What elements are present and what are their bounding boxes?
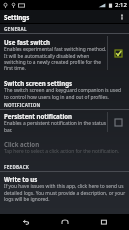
staticText: Enables experimental fast switching meth… [4,46,108,71]
button[interactable]: Write to us [0,172,129,204]
staticText: If you have issues with this app, click … [4,183,126,202]
button[interactable]: Back [10,214,40,230]
button[interactable]: Switch screen settings [0,72,129,101]
button[interactable]: Persistent notification [0,110,129,134]
staticText: Enables a persistent notification in the… [4,120,108,133]
staticText: Switch screen settings [4,79,73,87]
button[interactable]: Click action [0,134,129,156]
button[interactable]: Use fast switch [0,34,129,72]
button[interactable]: Home [50,214,80,230]
staticText: The switch screen and keyguard companion… [4,87,126,100]
staticText: 2:12 [115,1,127,9]
staticText: Use fast switch [4,38,51,46]
staticText: Tap here to select a click action for th… [4,148,120,155]
staticText: GENERAL [4,26,27,32]
button[interactable]: More options [115,10,129,24]
staticText: NOTIFICATION [4,102,41,108]
staticText: FEEDBACK [4,164,30,170]
staticText: Click action [4,140,40,148]
staticText: Write to us [4,175,38,183]
staticText: Settings [4,13,30,21]
button[interactable]: Recent apps [89,214,119,230]
staticText: Persistent notification [4,112,73,120]
